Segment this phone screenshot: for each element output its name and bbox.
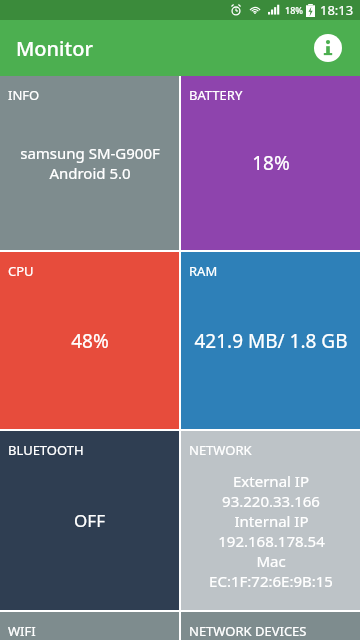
staticText: External IP [233,471,309,491]
staticText: NETWORK [189,441,252,459]
staticText: CPU [8,262,34,280]
staticText: WIFI [8,622,36,640]
staticText: 18% [252,150,290,176]
staticText: RAM [189,262,218,280]
staticText: INFO [8,86,40,104]
staticText: 48% [71,328,109,354]
staticText: 18% [285,4,303,16]
staticText: 93.220.33.166 [222,491,320,511]
staticText: OFF [74,509,105,532]
button[interactable]: BATTERY [181,76,360,250]
button[interactable]: CPU [0,252,179,429]
staticText: BLUETOOTH [8,441,84,459]
staticText: Mac [256,551,286,571]
button[interactable]: WIFI [0,612,179,640]
staticText: Android 5.0 [49,163,131,183]
staticText: BATTERY [189,86,243,104]
staticText: Monitor [16,35,93,62]
staticText: 18:13 [320,1,354,19]
staticText: samsung SM-G900F [20,143,160,163]
button[interactable]: INFO [0,76,179,250]
button[interactable]: NETWORK [181,431,360,610]
button[interactable]: RAM [181,252,360,429]
staticText: 192.168.178.54 [218,531,325,551]
staticText: 421.9 MB/ 1.8 GB [194,328,348,354]
staticText: EC:1F:72:6E:9B:15 [209,571,333,591]
button[interactable]: Info [306,26,350,70]
staticText: Internal IP [234,511,309,531]
button[interactable]: NETWORK DEVICES [181,612,360,640]
button[interactable]: BLUETOOTH [0,431,179,610]
staticText: NETWORK DEVICES [189,622,307,640]
